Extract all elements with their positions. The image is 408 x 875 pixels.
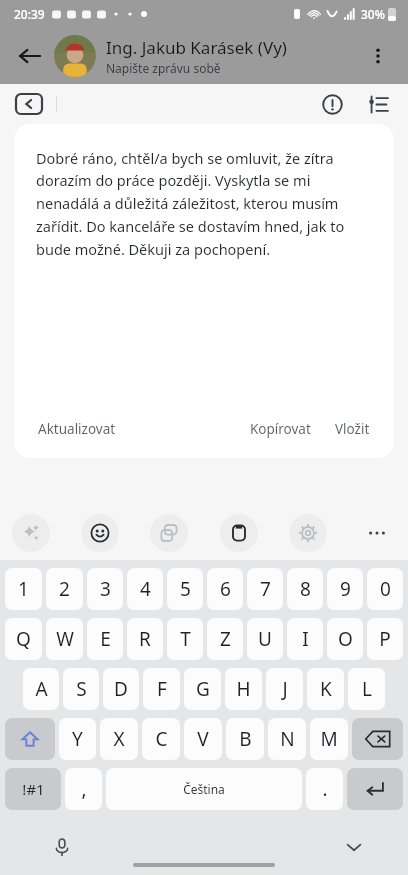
button[interactable]: Enter [347,768,403,810]
button[interactable]: Kopírovat [248,418,313,440]
staticText: U [258,626,272,652]
button[interactable]: X [100,718,138,760]
staticText: 8 [300,576,311,602]
staticText: X [113,726,125,752]
staticText: E [100,626,111,652]
button[interactable]: N [268,718,306,760]
button[interactable]: Čeština [106,768,302,810]
button[interactable]: 6 [207,568,243,610]
button[interactable]: 5 [167,568,203,610]
staticText: V [197,726,209,752]
staticText: G [196,676,210,702]
button[interactable]: Info [316,88,348,120]
button[interactable]: G [184,668,221,710]
button[interactable]: , [65,768,102,810]
button[interactable]: Magic compose [12,514,50,552]
button[interactable]: 0 [367,568,403,610]
button[interactable]: B [226,718,264,760]
button[interactable]: W [46,618,83,660]
button[interactable]: 1 [5,568,42,610]
staticText: 0 [380,576,391,602]
button[interactable]: L [348,668,385,710]
button[interactable]: 3 [87,568,123,610]
button[interactable]: More [358,514,396,552]
button[interactable]: 4 [127,568,163,610]
button[interactable]: Shift [5,718,55,760]
button[interactable]: M [310,718,348,760]
button[interactable]: . [306,768,343,810]
button[interactable]: R [127,618,163,660]
button[interactable]: O [327,618,363,660]
button[interactable]: 2 [46,568,83,610]
staticText: D [114,676,128,702]
button[interactable]: Settings sliders [362,88,394,120]
button[interactable]: Backspace [352,718,403,760]
button[interactable]: D [103,668,139,710]
staticText: Napište zprávu sobě [106,60,221,76]
staticText: K [320,676,332,702]
button[interactable]: J [266,668,303,710]
button[interactable]: Emoji [81,514,119,552]
button[interactable]: Dobré ráno, chtěl/a bych se omluvit, že … [14,124,394,458]
staticText: M [320,726,338,752]
button[interactable]: E [87,618,123,660]
button[interactable]: P [367,618,403,660]
staticText: 5 [180,576,191,602]
button[interactable]: Back [10,36,50,76]
button[interactable]: K [307,668,344,710]
button[interactable]: I [287,618,323,660]
staticText: N [280,726,295,752]
staticText: W [56,626,74,652]
button[interactable]: !#1 [5,768,61,810]
staticText: Dobré ráno, chtěl/a bych se omluvit, že … [36,148,372,259]
button[interactable]: S [63,668,99,710]
staticText: 2 [59,576,70,602]
staticText: T [180,626,191,652]
staticText: Q [16,626,31,652]
staticText: 30% [361,6,385,22]
button[interactable]: F [143,668,180,710]
button[interactable]: Previous suggestion [14,92,44,116]
button[interactable]: Clipboard [220,514,258,552]
staticText: Kopírovat [250,420,311,438]
staticText: 1 [18,576,29,602]
button[interactable]: H [225,668,262,710]
button[interactable]: A [23,668,59,710]
button[interactable] [54,35,96,77]
button[interactable]: T [167,618,203,660]
staticText: 20:39 [14,6,45,22]
staticText: . [322,776,328,802]
button[interactable]: More options [358,36,398,76]
staticText: C [155,726,168,752]
staticText: R [139,626,151,652]
staticText: B [239,726,252,752]
staticText: P [379,626,391,652]
button[interactable]: Q [5,618,42,660]
staticText: 3 [100,576,111,602]
button[interactable]: Settings [289,514,327,552]
staticText: , [81,776,87,802]
button[interactable]: V [184,718,222,760]
button[interactable]: Y [59,718,96,760]
staticText: F [157,676,167,702]
staticText: Vložit [335,420,370,438]
button[interactable]: Vložit [333,418,372,440]
button[interactable]: Aktualizovat [36,418,118,440]
button[interactable]: C [142,718,180,760]
button[interactable]: Stickers [150,514,188,552]
button[interactable]: 7 [247,568,283,610]
staticText: !#1 [22,779,45,799]
staticText: L [362,676,372,702]
button[interactable]: Z [207,618,243,660]
button[interactable]: U [247,618,283,660]
staticText: Ing. Jakub Karásek (Vy) [106,36,287,59]
staticText: 7 [260,576,271,602]
button[interactable]: 9 [327,568,363,610]
staticText: I [302,626,309,652]
button[interactable]: Voice input [46,831,78,863]
button[interactable]: 8 [287,568,323,610]
staticText: 6 [220,576,231,602]
staticText: J [282,676,288,702]
staticText: O [338,626,353,652]
button[interactable]: Hide keyboard [338,831,370,863]
